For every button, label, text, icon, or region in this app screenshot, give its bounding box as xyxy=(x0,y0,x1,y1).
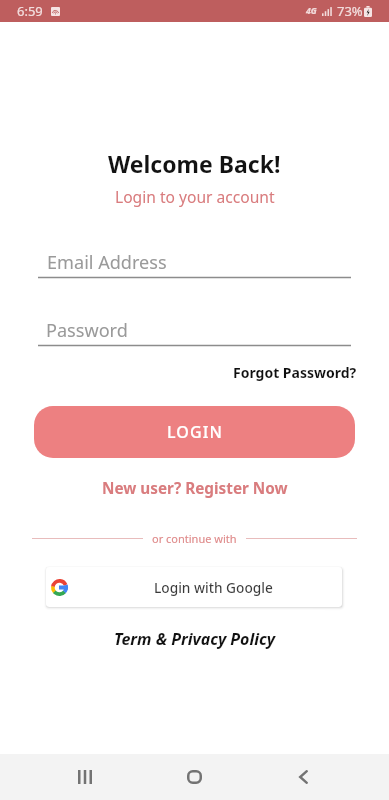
button[interactable]: Recent apps xyxy=(63,754,107,800)
staticText: New user? Register Now xyxy=(102,478,288,499)
button[interactable]: Email Address xyxy=(47,250,352,280)
staticText: 4G xyxy=(306,5,317,17)
staticText: Email Address xyxy=(47,250,167,275)
staticText: 73% xyxy=(337,2,363,20)
button[interactable]: LOGIN xyxy=(34,406,355,458)
staticText: or continue with xyxy=(152,531,237,546)
button[interactable]: Term & Privacy Policy xyxy=(112,626,278,652)
staticText: Term & Privacy Policy xyxy=(114,628,276,650)
button[interactable]: Forgot Password? xyxy=(231,361,359,384)
staticText: Forgot Password? xyxy=(233,363,357,382)
button[interactable]: Back xyxy=(281,754,325,800)
button[interactable]: Password xyxy=(46,318,351,348)
button[interactable]: Home xyxy=(172,754,216,800)
staticText: 6:59 xyxy=(17,2,43,20)
staticText: Password xyxy=(46,318,128,343)
staticText: Login with Google xyxy=(154,578,273,597)
button[interactable]: New user? Register Now xyxy=(100,476,290,501)
staticText: Login to your account xyxy=(115,186,275,207)
staticText: Welcome Back! xyxy=(108,148,281,179)
staticText: LOGIN xyxy=(167,421,223,443)
button[interactable]: Login with Google xyxy=(46,567,342,607)
